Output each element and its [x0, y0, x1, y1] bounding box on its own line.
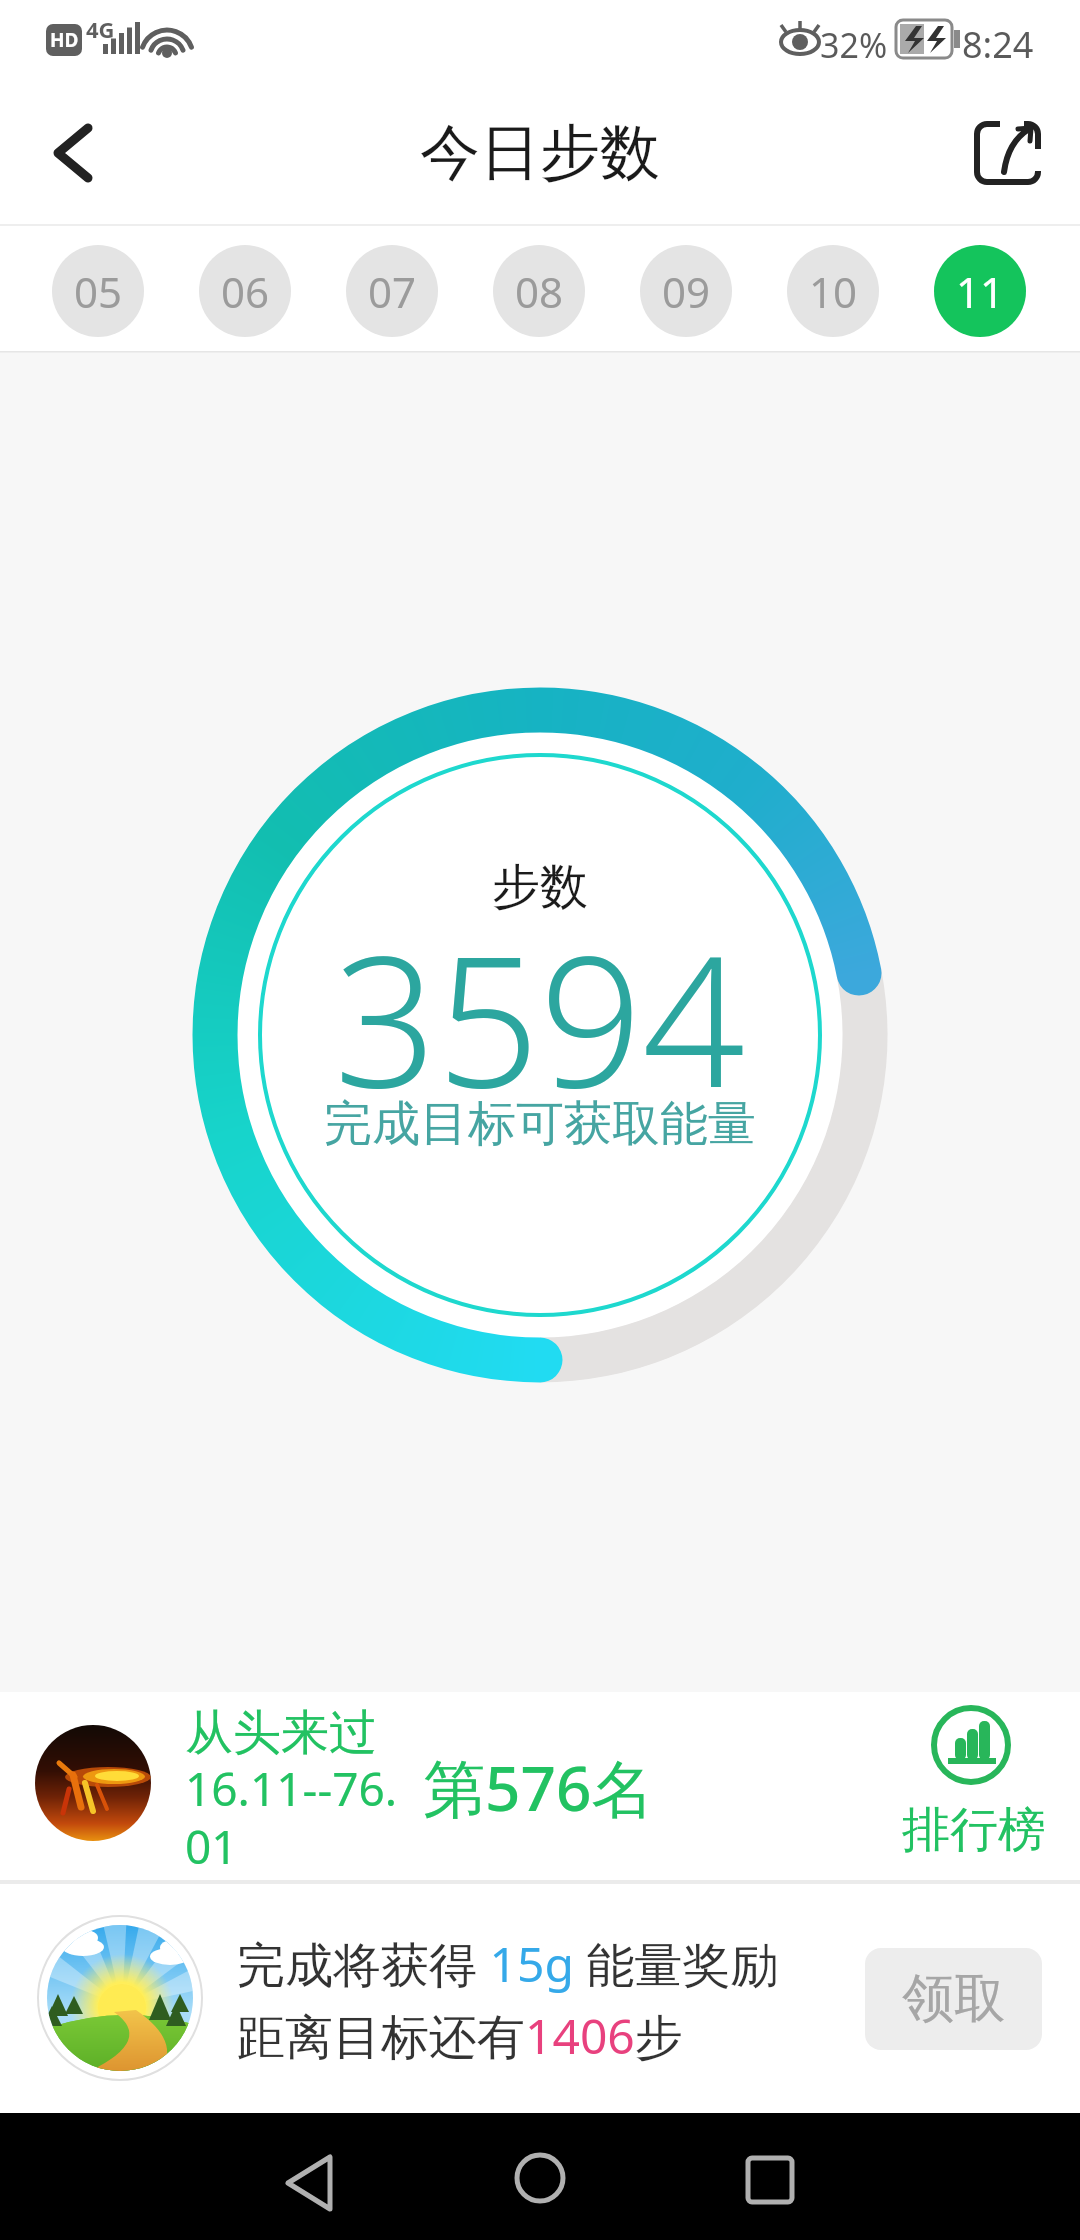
staticText: 完成将获得 15g 能量奖励 — [237, 1931, 779, 1997]
staticText: 步数 — [492, 857, 588, 917]
staticText: 今日步数 — [420, 115, 660, 191]
staticText: 10 — [809, 263, 858, 320]
staticText: 8:24 — [962, 20, 1034, 69]
staticText: 08 — [515, 263, 564, 320]
staticText: 11 — [956, 263, 1005, 320]
staticText: 完成目标可获取能量 — [324, 1094, 756, 1154]
staticText: 从头来过 — [185, 1703, 377, 1763]
staticText: 32% — [820, 22, 888, 68]
staticText: 16.11--76. — [185, 1757, 398, 1820]
staticText: 06 — [221, 263, 270, 320]
staticText: 距离目标还有1406步 — [237, 2003, 683, 2069]
staticText: 领取 — [902, 1966, 1006, 2032]
staticText: HD — [50, 27, 79, 53]
staticText: 4G — [86, 14, 115, 44]
staticText: 07 — [368, 263, 417, 320]
staticText: 09 — [662, 263, 711, 320]
staticText: 01 — [185, 1815, 238, 1878]
staticText: 05 — [74, 263, 123, 320]
staticText: 3594 — [334, 895, 746, 1140]
staticText: 排行榜 — [902, 1800, 1046, 1860]
staticText: 第576名 — [423, 1745, 654, 1830]
